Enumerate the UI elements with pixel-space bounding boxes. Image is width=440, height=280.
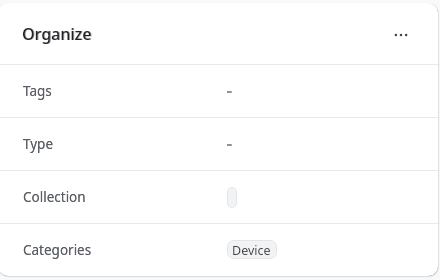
staticText: Device xyxy=(232,242,271,259)
staticText: Tags xyxy=(23,82,52,100)
button[interactable]: Collection xyxy=(227,187,237,208)
button[interactable]: Device xyxy=(227,240,277,259)
staticText: Categories xyxy=(23,241,92,259)
button[interactable]: Categories xyxy=(0,224,440,276)
staticText: Categories xyxy=(23,241,92,259)
staticText: Tags xyxy=(23,82,52,100)
staticText: Organize xyxy=(22,23,92,45)
button[interactable]: Tags xyxy=(0,65,440,117)
staticText: Type xyxy=(23,135,54,153)
staticText: Type xyxy=(23,135,54,153)
staticText: Collection xyxy=(23,188,86,206)
button[interactable]: Type xyxy=(0,118,440,170)
staticText: Collection xyxy=(23,188,86,206)
button[interactable]: More options xyxy=(386,20,416,50)
staticText: Organize xyxy=(23,23,93,45)
button[interactable]: Collection xyxy=(0,171,440,223)
